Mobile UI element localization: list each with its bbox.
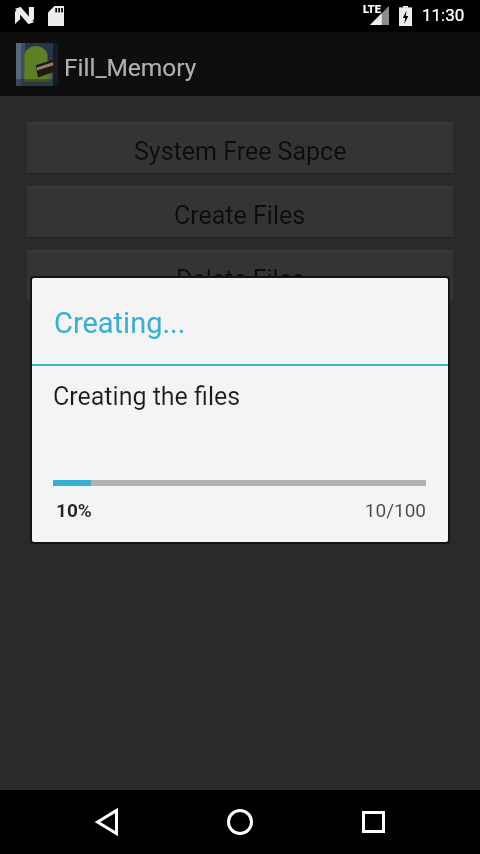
button[interactable]: Delete Files — [27, 250, 453, 302]
button[interactable]: Create Files — [27, 186, 453, 238]
staticText: Creating... — [54, 306, 186, 340]
staticText: LTE — [363, 3, 381, 16]
button[interactable]: Back — [75, 790, 139, 854]
button[interactable]: System Free Sapce — [27, 122, 453, 174]
staticText: Delete Files — [176, 265, 305, 294]
staticText: 10/100 — [53, 499, 426, 521]
staticText: 10% — [56, 499, 92, 521]
button[interactable]: Home — [208, 790, 272, 854]
staticText: System Free Sapce — [134, 137, 347, 166]
staticText: Fill_Memory — [64, 53, 197, 82]
staticText: Creating the files — [53, 382, 241, 411]
staticText: Create Files — [174, 201, 306, 230]
staticText: 11:30 — [422, 5, 465, 25]
button[interactable]: Recent apps — [341, 790, 405, 854]
